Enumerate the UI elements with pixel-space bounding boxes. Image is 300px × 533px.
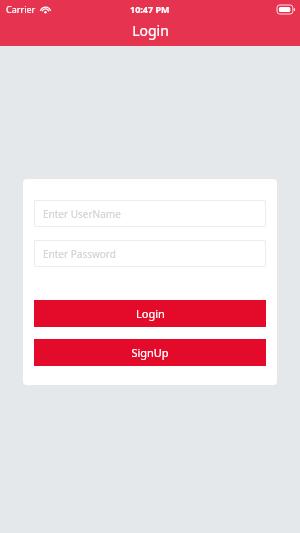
button[interactable]: Enter Password: [34, 240, 266, 267]
staticText: SignUp: [131, 345, 169, 360]
button[interactable]: SignUp: [34, 339, 266, 366]
other: Battery: [277, 5, 295, 14]
staticText: Login: [132, 21, 169, 40]
staticText: Enter Password: [43, 247, 116, 261]
button[interactable]: Login: [34, 300, 266, 327]
button[interactable]: Enter UserName: [34, 200, 266, 227]
other: Wi-Fi signal: [40, 5, 51, 13]
staticText: Login: [136, 306, 165, 321]
staticText: Enter UserName: [43, 207, 121, 221]
staticText: 10:47 PM: [130, 3, 170, 15]
staticText: Carrier: [6, 3, 36, 15]
